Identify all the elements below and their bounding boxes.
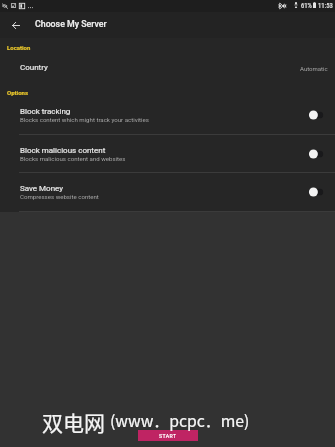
staticText: 61%: [301, 2, 312, 10]
button[interactable]: Save Money: [0, 184, 335, 222]
button[interactable]: Country: [0, 54, 335, 80]
staticText: Automatic: [300, 65, 328, 72]
button[interactable]: Back: [7, 16, 25, 34]
button[interactable]: Toggle: [304, 181, 328, 203]
button[interactable]: Block malicious content: [0, 146, 335, 184]
staticText: Compresses website content: [20, 193, 99, 200]
staticText: Choose My Server: [35, 19, 107, 29]
staticText: Block tracking: [20, 107, 71, 116]
staticText: 11:53: [318, 2, 333, 10]
button[interactable]: Toggle: [304, 143, 328, 165]
staticText: Blocks malicious content and websites: [20, 155, 126, 162]
staticText: (www．pcpc．me): [110, 409, 250, 432]
staticText: Options: [7, 89, 28, 96]
staticText: START: [159, 433, 177, 439]
staticText: Country: [20, 63, 48, 72]
button[interactable]: Toggle: [304, 104, 328, 126]
staticText: Location: [7, 44, 31, 51]
staticText: Save Money: [20, 184, 64, 193]
staticText: Blocks content which might track your ac…: [20, 116, 149, 123]
staticText: Block malicious content: [20, 146, 106, 155]
button[interactable]: Block tracking: [0, 107, 335, 145]
staticText: 双电网: [42, 407, 105, 437]
